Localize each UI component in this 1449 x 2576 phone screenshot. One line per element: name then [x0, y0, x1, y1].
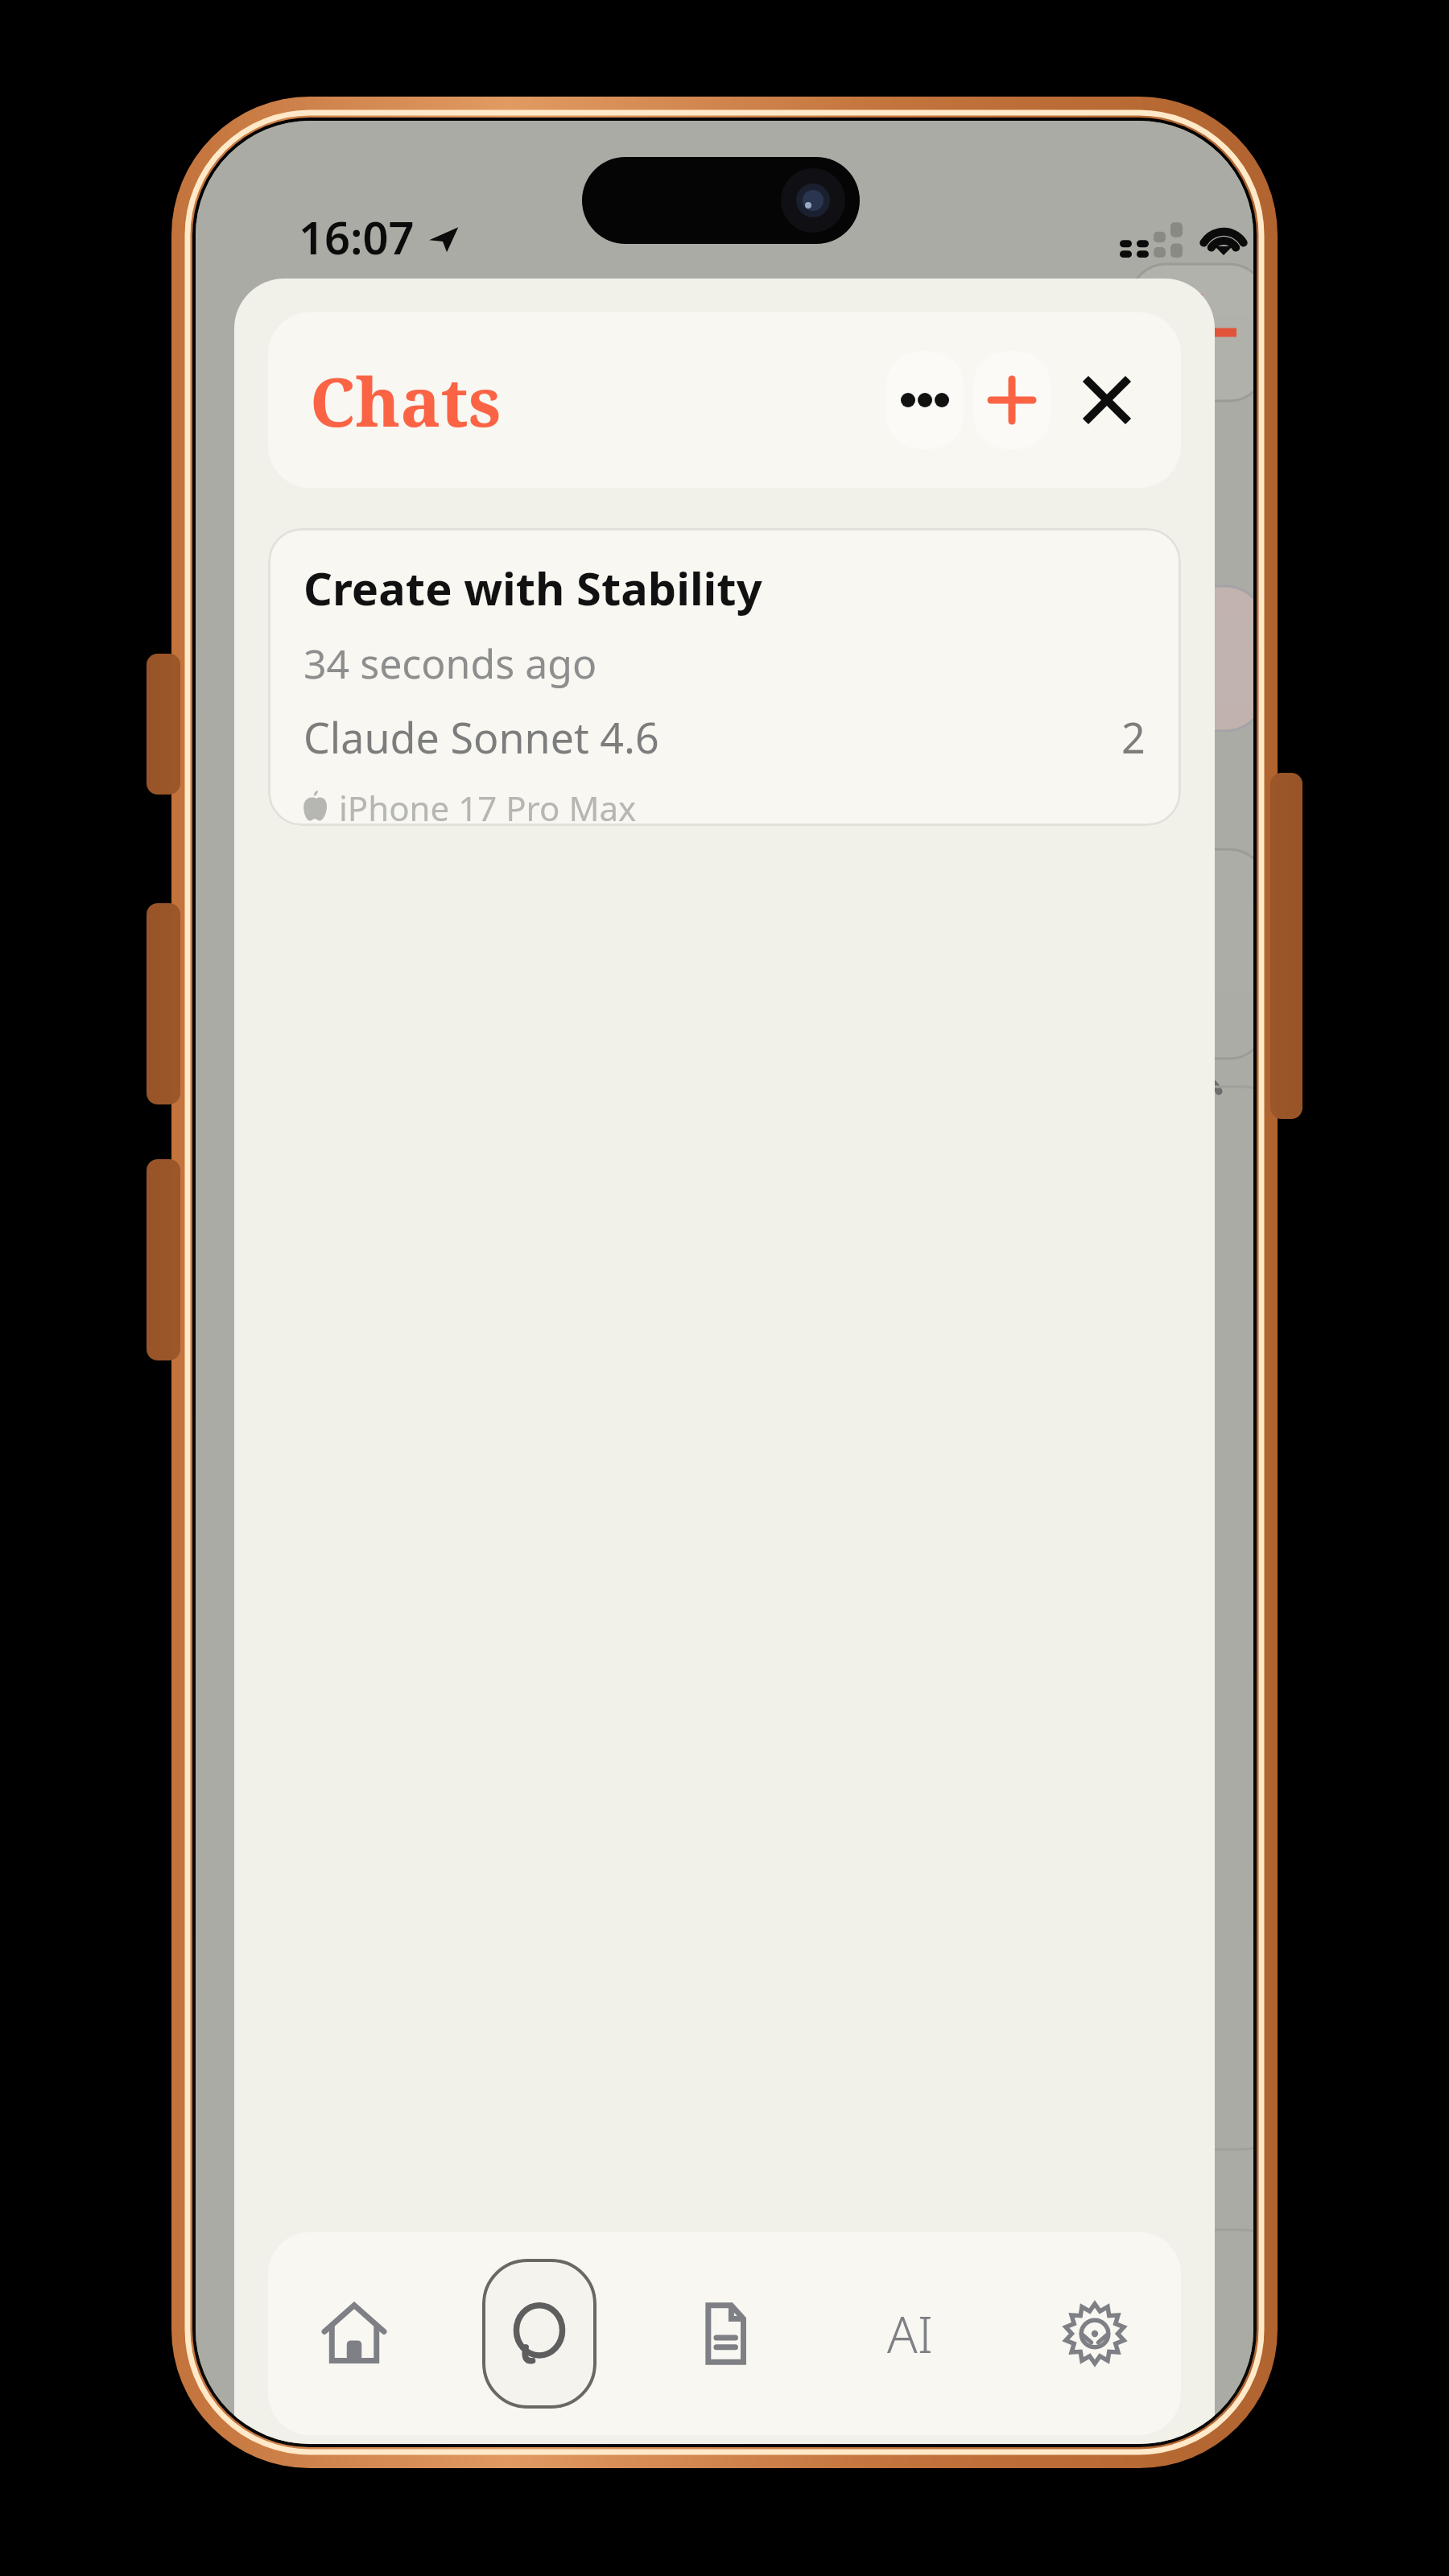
staticText: Claude Sonnet 4.6 — [303, 708, 659, 766]
staticText: 34 seconds ago — [303, 636, 597, 691]
staticText: AI — [887, 2300, 933, 2368]
staticText: 16:07 — [299, 206, 415, 267]
staticText: Create with Stability — [303, 557, 762, 618]
staticText: iPhone 17 Pro Max — [339, 785, 637, 826]
button[interactable]: Home — [297, 2259, 411, 2409]
button[interactable]: Create with Stability — [268, 528, 1181, 826]
staticText: 2 — [1121, 708, 1146, 766]
button[interactable]: More options — [886, 351, 964, 449]
button[interactable]: AI — [852, 2259, 967, 2409]
button[interactable]: Close — [1068, 361, 1146, 439]
button[interactable]: New chat — [973, 351, 1051, 449]
staticText: nts — [1128, 774, 1179, 820]
staticText: Chats — [310, 354, 502, 446]
button[interactable]: Settings — [1038, 2259, 1152, 2409]
button[interactable]: Chats — [482, 2259, 597, 2409]
button[interactable]: Documents — [667, 2259, 782, 2409]
